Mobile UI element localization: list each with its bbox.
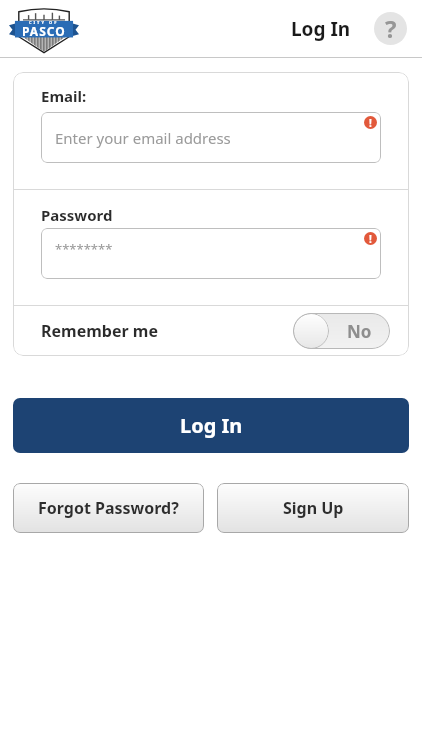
button[interactable]: Sign Up	[217, 483, 409, 533]
button[interactable]: ********	[41, 228, 381, 279]
staticText: Log In	[180, 412, 243, 439]
staticText: PASCO	[22, 23, 66, 39]
staticText: Remember me	[41, 320, 158, 342]
staticText: ?	[385, 12, 397, 45]
button[interactable]: Enter your email address	[41, 112, 381, 163]
button[interactable]: Log In	[13, 398, 409, 453]
button[interactable]: No	[293, 313, 390, 349]
button[interactable]: ?	[374, 12, 407, 45]
staticText: Forgot Password?	[38, 497, 179, 519]
staticText: Sign Up	[283, 497, 344, 519]
staticText: !	[369, 232, 372, 245]
staticText: CITY OF	[29, 20, 59, 25]
staticText: !	[369, 116, 372, 129]
staticText: Enter your email address	[55, 128, 231, 148]
staticText: Password	[41, 205, 113, 225]
staticText: Email:	[41, 86, 87, 106]
staticText: ********	[55, 240, 113, 258]
staticText: No	[347, 320, 372, 343]
staticText: Log In	[291, 16, 351, 42]
button[interactable]: Forgot Password?	[13, 483, 204, 533]
